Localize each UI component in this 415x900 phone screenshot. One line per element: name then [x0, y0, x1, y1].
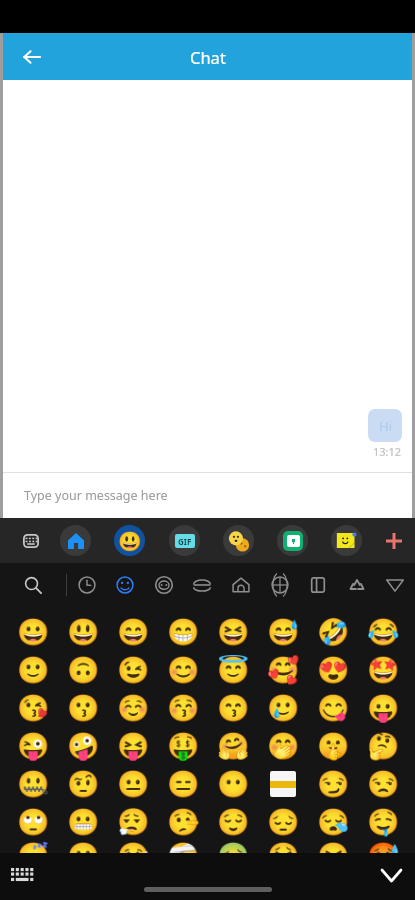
button[interactable]: Home — [48, 518, 102, 563]
button[interactable]: 🤩 — [358, 651, 408, 689]
staticText: 🤑 — [167, 731, 200, 762]
button[interactable]: 🙂 — [9, 651, 58, 689]
button[interactable]: 🙃 — [58, 651, 108, 689]
button[interactable]: More — [373, 518, 415, 563]
button[interactable]: 🤥 — [158, 803, 208, 841]
button[interactable]: 😮‍💨 — [108, 803, 158, 841]
button[interactable]: 😂 — [358, 613, 408, 651]
staticText: 😮‍💨 — [117, 807, 150, 838]
button[interactable]: 😗 — [58, 689, 108, 727]
button[interactable]: 🤪 — [58, 727, 108, 765]
button[interactable]: Create sticker — [319, 518, 373, 563]
button[interactable]: 😚 — [158, 689, 208, 727]
staticText: 😒 — [367, 769, 400, 800]
button[interactable]: GIF — [157, 518, 211, 563]
staticText: 😶 — [217, 769, 250, 800]
staticText: 😘 — [17, 693, 50, 724]
button[interactable]: 😆 — [208, 613, 258, 651]
button[interactable]: Travel — [222, 563, 260, 606]
staticText: 13:12 — [373, 444, 402, 459]
button[interactable]: Close keyboard — [368, 853, 415, 900]
button[interactable]: 😷 — [58, 841, 108, 853]
button[interactable]: Symbols — [338, 563, 376, 606]
button[interactable]: 😁 — [158, 613, 208, 651]
button[interactable]: 🤢 — [208, 841, 258, 853]
staticText: 🤕 — [167, 841, 200, 853]
button[interactable]: Stickers — [211, 518, 265, 563]
button[interactable]: 😝 — [108, 727, 158, 765]
button[interactable]: Recent — [68, 563, 106, 606]
button[interactable]: 😶 — [208, 765, 258, 803]
staticText: 🤮 — [267, 841, 300, 853]
button[interactable]: 🤤 — [358, 803, 408, 841]
button[interactable]: Food — [183, 563, 221, 606]
button[interactable]: 😛 — [358, 689, 408, 727]
staticText: 🤐 — [17, 769, 50, 800]
button[interactable]: 🤭 — [258, 727, 308, 765]
button[interactable]: 🤔 — [358, 727, 408, 765]
button[interactable]: 🤐 — [9, 765, 58, 803]
button[interactable]: 😋 — [308, 689, 358, 727]
button[interactable]: 😊 — [158, 651, 208, 689]
button[interactable]: 😄 — [108, 613, 158, 651]
button[interactable]: 🥰 — [258, 651, 308, 689]
button[interactable]: 😌 — [208, 803, 258, 841]
button[interactable]: 😇 — [208, 651, 258, 689]
staticText: 😪 — [317, 807, 350, 838]
button[interactable]: 😴 — [9, 841, 58, 853]
button[interactable]: 😃 — [58, 613, 108, 651]
staticText: 🥵 — [367, 841, 400, 853]
button[interactable]: ☺️ — [108, 689, 158, 727]
button[interactable]: 🥵 — [358, 841, 408, 853]
button[interactable]: Switch keyboard — [0, 853, 46, 900]
button[interactable]: Type your message here — [3, 472, 412, 518]
button[interactable]: 😙 — [208, 689, 258, 727]
button[interactable]: Activities — [261, 563, 299, 606]
button[interactable]: 😉 — [108, 651, 158, 689]
staticText: 😉 — [117, 655, 150, 686]
staticText: 🙂 — [17, 655, 50, 686]
button[interactable]: 😍 — [308, 651, 358, 689]
button[interactable]: 🤮 — [258, 841, 308, 853]
button[interactable]: 🙄 — [9, 803, 58, 841]
button[interactable]: 😐 — [108, 765, 158, 803]
button[interactable]: 😬 — [58, 803, 108, 841]
button[interactable]: Flags — [376, 563, 414, 606]
button[interactable]: 😒 — [358, 765, 408, 803]
button[interactable]: 🤧 — [308, 841, 358, 853]
button[interactable]: Emoji — [102, 518, 157, 563]
button[interactable]: Clipboard — [265, 518, 319, 563]
button[interactable]: 🤑 — [158, 727, 208, 765]
button[interactable]: 🤕 — [158, 841, 208, 853]
button[interactable]: Smileys — [106, 563, 144, 606]
staticText: 😃 — [67, 617, 100, 648]
button[interactable]: 😑 — [158, 765, 208, 803]
staticText: 🤧 — [317, 841, 350, 853]
button[interactable]: Objects — [299, 563, 337, 606]
button[interactable]: 😅 — [258, 613, 308, 651]
staticText: 😋 — [317, 693, 350, 724]
staticText: 🤪 — [67, 731, 100, 762]
button[interactable]: 🤣 — [308, 613, 358, 651]
button[interactable]: 🤒 — [108, 841, 158, 853]
staticText: 😅 — [267, 617, 300, 648]
button[interactable]: Keyboard — [0, 518, 48, 563]
staticText: Hi — [379, 417, 392, 435]
button[interactable]: 😏 — [308, 765, 358, 803]
button[interactable]: 😜 — [9, 727, 58, 765]
button[interactable]: 🤗 — [208, 727, 258, 765]
staticText: 😍 — [317, 655, 350, 686]
staticText: 😌 — [217, 807, 250, 838]
button[interactable]: 😪 — [308, 803, 358, 841]
button[interactable] — [258, 765, 308, 803]
button[interactable]: 🤫 — [308, 727, 358, 765]
button[interactable]: 😔 — [258, 803, 308, 841]
button[interactable]: Animals — [145, 563, 183, 606]
button[interactable]: Search — [0, 563, 66, 606]
button[interactable]: 😘 — [9, 689, 58, 727]
button[interactable]: 🤨 — [58, 765, 108, 803]
button[interactable]: 🥲 — [258, 689, 308, 727]
button[interactable]: Back — [3, 33, 61, 80]
button[interactable]: 😀 — [9, 613, 58, 651]
staticText: 😐 — [117, 769, 150, 800]
